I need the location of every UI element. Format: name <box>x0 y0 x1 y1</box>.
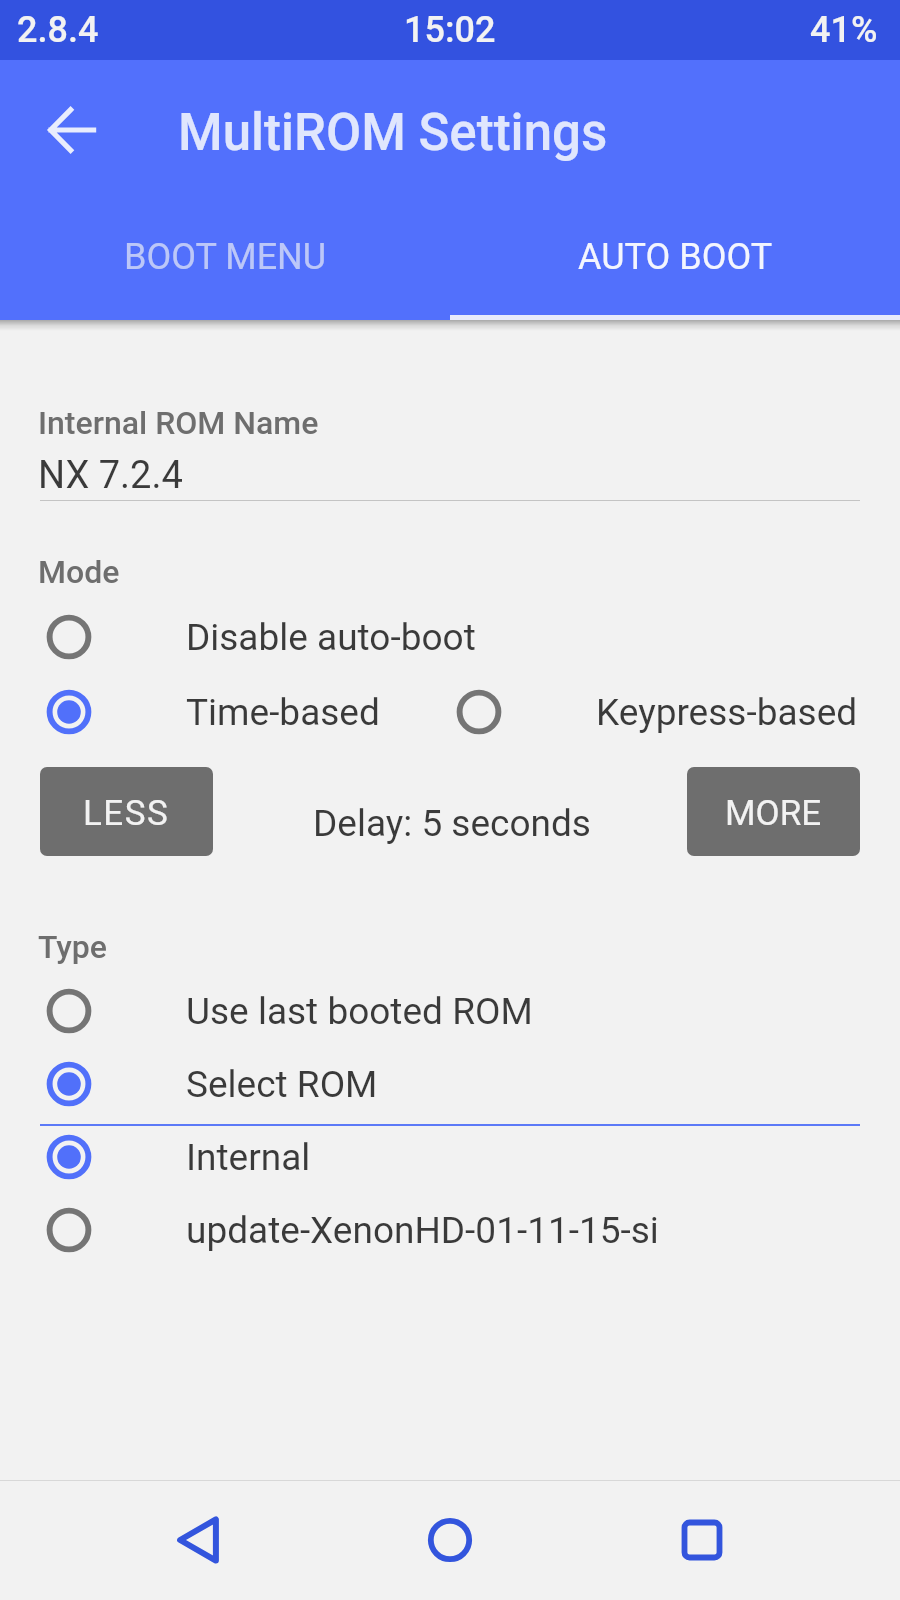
staticText: Internal ROM Name <box>38 404 319 442</box>
staticText: AUTO BOOT <box>578 236 773 278</box>
staticText: 41% <box>810 9 878 51</box>
button[interactable]: Disable auto-boot <box>0 600 900 674</box>
staticText: Mode <box>38 553 120 591</box>
button[interactable]: update-XenonHD-01-11-15-si <box>0 1193 900 1267</box>
button[interactable]: Navigate up <box>26 85 116 175</box>
staticText: MultiROM Settings <box>178 103 608 163</box>
button[interactable]: Select ROM <box>0 1047 900 1121</box>
staticText: Keypress-based <box>596 691 858 734</box>
staticText: MORE <box>725 793 822 834</box>
staticText: LESS <box>83 793 170 834</box>
button[interactable]: AUTO BOOT <box>450 194 900 320</box>
staticText: Delay: 5 seconds <box>313 802 591 845</box>
button[interactable]: BOOT MENU <box>0 194 450 320</box>
staticText: 2.8.4 <box>17 9 99 51</box>
staticText: Disable auto-boot <box>186 616 476 659</box>
button[interactable]: Internal <box>0 1120 900 1194</box>
button[interactable]: MORE <box>687 767 860 856</box>
button[interactable]: LESS <box>40 767 213 856</box>
staticText: NX 7.2.4 <box>38 453 183 498</box>
button[interactable]: Use last booted ROM <box>0 974 900 1048</box>
staticText: BOOT MENU <box>124 236 327 278</box>
staticText: Type <box>38 928 107 966</box>
button[interactable]: Recent apps <box>657 1480 747 1600</box>
staticText: update-XenonHD-01-11-15-si <box>186 1209 659 1252</box>
button[interactable]: Time-based <box>0 675 450 749</box>
staticText: Internal <box>186 1136 311 1179</box>
staticText: 15:02 <box>404 9 496 51</box>
button[interactable]: Home <box>405 1480 495 1600</box>
staticText: Select ROM <box>186 1063 378 1106</box>
button[interactable]: Back <box>153 1480 243 1600</box>
staticText: Time-based <box>186 691 380 734</box>
staticText: Use last booted ROM <box>186 990 533 1033</box>
button[interactable]: Keypress-based <box>450 675 900 749</box>
